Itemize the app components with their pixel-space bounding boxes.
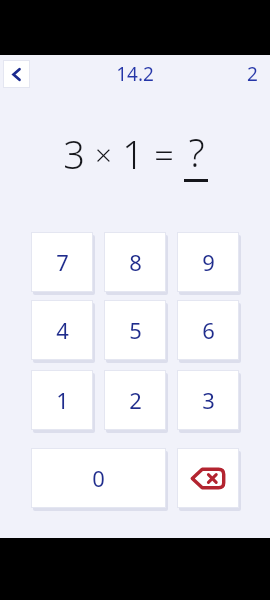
button[interactable]: 0 [31, 448, 166, 508]
staticText: 1 [122, 128, 144, 180]
button[interactable]: Back [3, 60, 30, 88]
staticText: 3 [202, 385, 215, 415]
button[interactable]: 2 [247, 60, 270, 88]
staticText: 9 [202, 247, 215, 277]
staticText: 3 [63, 128, 85, 180]
button[interactable]: 5 [104, 300, 166, 360]
staticText: 8 [129, 247, 142, 277]
button[interactable]: 7 [31, 232, 93, 292]
button[interactable]: 6 [177, 300, 239, 360]
button[interactable]: 8 [104, 232, 166, 292]
staticText: 14.2 [116, 61, 154, 87]
staticText: 2 [129, 385, 142, 415]
button[interactable]: Backspace [177, 448, 239, 508]
staticText: 6 [202, 315, 215, 345]
staticText: 0 [92, 463, 105, 493]
button[interactable]: 2 [104, 370, 166, 430]
staticText: 4 [56, 315, 69, 345]
button[interactable]: 3 [177, 370, 239, 430]
staticText: = [154, 131, 174, 178]
button[interactable]: 4 [31, 300, 93, 360]
staticText: 7 [56, 247, 69, 277]
staticText: × [95, 134, 112, 174]
staticText: 5 [129, 315, 142, 345]
staticText: 1 [56, 385, 69, 415]
button[interactable]: 1 [31, 370, 93, 430]
staticText: ? [188, 126, 205, 178]
staticText: 2 [247, 61, 258, 87]
button[interactable]: 9 [177, 232, 239, 292]
